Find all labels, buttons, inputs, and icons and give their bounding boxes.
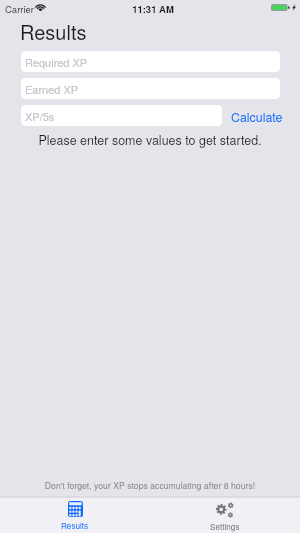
- staticText: Don't forget, your XP stops accumulating…: [0, 479, 300, 491]
- staticText: Required XP: [25, 54, 88, 70]
- button[interactable]: Required XP: [21, 51, 280, 72]
- staticText: Results: [20, 17, 87, 46]
- staticText: 11:31 AM: [3, 2, 300, 16]
- staticText: Please enter some values to get started.: [0, 131, 300, 149]
- staticText: Settings: [210, 521, 240, 533]
- staticText: Carrier: [5, 2, 35, 16]
- button[interactable]: Settings: [150, 498, 300, 533]
- button[interactable]: Earned XP: [21, 78, 280, 99]
- staticText: Earned XP: [25, 81, 79, 97]
- staticText: Results: [61, 520, 89, 532]
- button[interactable]: XP/5s: [21, 105, 222, 126]
- staticText: Calculate: [231, 108, 283, 126]
- staticText: XP/5s: [25, 108, 55, 124]
- button[interactable]: Calculate: [231, 106, 283, 127]
- button[interactable]: Results: [0, 498, 150, 533]
